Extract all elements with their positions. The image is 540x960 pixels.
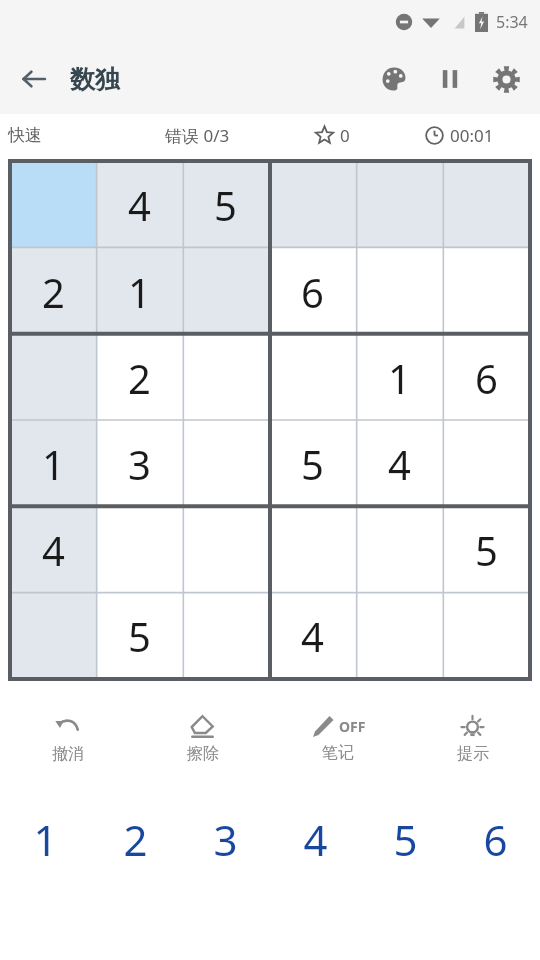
button[interactable]: 5: [269, 421, 356, 507]
button[interactable]: 5: [360, 799, 450, 879]
staticText: 1: [33, 811, 58, 868]
button[interactable]: 1: [0, 799, 90, 879]
button[interactable]: 5: [443, 507, 530, 593]
button[interactable]: [443, 161, 530, 248]
staticText: 4: [388, 437, 411, 491]
button[interactable]: [356, 507, 443, 593]
staticText: 1: [388, 351, 411, 405]
staticText: 4: [42, 523, 65, 577]
button[interactable]: [182, 248, 269, 335]
button[interactable]: Theme: [370, 55, 418, 103]
button[interactable]: 2: [96, 335, 182, 421]
button[interactable]: 撤消: [0, 699, 135, 777]
button[interactable]: OFF: [270, 699, 405, 777]
staticText: 4: [301, 609, 324, 663]
button[interactable]: 4: [96, 161, 182, 248]
staticText: 00:01: [450, 124, 494, 147]
button[interactable]: [443, 421, 530, 507]
button[interactable]: 5: [182, 161, 269, 248]
staticText: 5: [301, 437, 324, 491]
button[interactable]: 提示: [405, 699, 540, 777]
button[interactable]: Back: [10, 55, 58, 103]
button[interactable]: 擦除: [135, 699, 270, 777]
button[interactable]: 1: [356, 335, 443, 421]
staticText: 3: [128, 437, 151, 491]
button[interactable]: [96, 507, 182, 593]
button[interactable]: [182, 335, 269, 421]
staticText: 提示: [457, 744, 489, 764]
button[interactable]: 4: [10, 507, 96, 593]
button[interactable]: 4: [269, 593, 356, 679]
staticText: OFF: [339, 717, 366, 736]
staticText: 4: [128, 178, 151, 232]
staticText: 2: [42, 265, 65, 319]
button[interactable]: [356, 593, 443, 679]
button[interactable]: 3: [180, 799, 270, 879]
button[interactable]: [269, 161, 356, 248]
button[interactable]: 4: [356, 421, 443, 507]
staticText: 快速: [8, 125, 42, 146]
button[interactable]: 1: [96, 248, 182, 335]
button[interactable]: [10, 335, 96, 421]
staticText: 错误 0/3: [165, 124, 230, 147]
staticText: 擦除: [187, 744, 219, 764]
staticText: 5: [393, 811, 418, 868]
button[interactable]: [182, 507, 269, 593]
button[interactable]: 4: [270, 799, 360, 879]
button[interactable]: [269, 507, 356, 593]
button[interactable]: [182, 593, 269, 679]
staticText: 撤消: [52, 744, 84, 764]
button[interactable]: 3: [96, 421, 182, 507]
button[interactable]: [182, 421, 269, 507]
staticText: 6: [475, 351, 498, 405]
staticText: 2: [123, 811, 148, 868]
button[interactable]: 1: [10, 421, 96, 507]
staticText: 5: [475, 523, 498, 577]
button[interactable]: Settings: [482, 55, 530, 103]
staticText: 5: [128, 609, 151, 663]
button[interactable]: [10, 593, 96, 679]
staticText: 6: [483, 811, 508, 868]
staticText: 5: [214, 178, 237, 232]
button[interactable]: [356, 248, 443, 335]
staticText: 0: [340, 124, 350, 147]
staticText: 2: [128, 351, 151, 405]
staticText: 数独: [70, 64, 120, 95]
staticText: 3: [213, 811, 238, 868]
staticText: 6: [301, 265, 324, 319]
button[interactable]: 6: [450, 799, 540, 879]
button[interactable]: [269, 335, 356, 421]
staticText: 4: [303, 811, 328, 868]
staticText: 1: [128, 265, 151, 319]
button[interactable]: 6: [443, 335, 530, 421]
button[interactable]: 2: [90, 799, 180, 879]
button[interactable]: 5: [96, 593, 182, 679]
button[interactable]: 6: [269, 248, 356, 335]
button[interactable]: 2: [10, 248, 96, 335]
staticText: 1: [42, 437, 65, 491]
button[interactable]: [10, 161, 96, 248]
button[interactable]: [443, 248, 530, 335]
button[interactable]: [443, 593, 530, 679]
button[interactable]: Pause: [426, 55, 474, 103]
button[interactable]: [356, 161, 443, 248]
staticText: 笔记: [322, 743, 354, 763]
staticText: 5:34: [496, 11, 528, 33]
